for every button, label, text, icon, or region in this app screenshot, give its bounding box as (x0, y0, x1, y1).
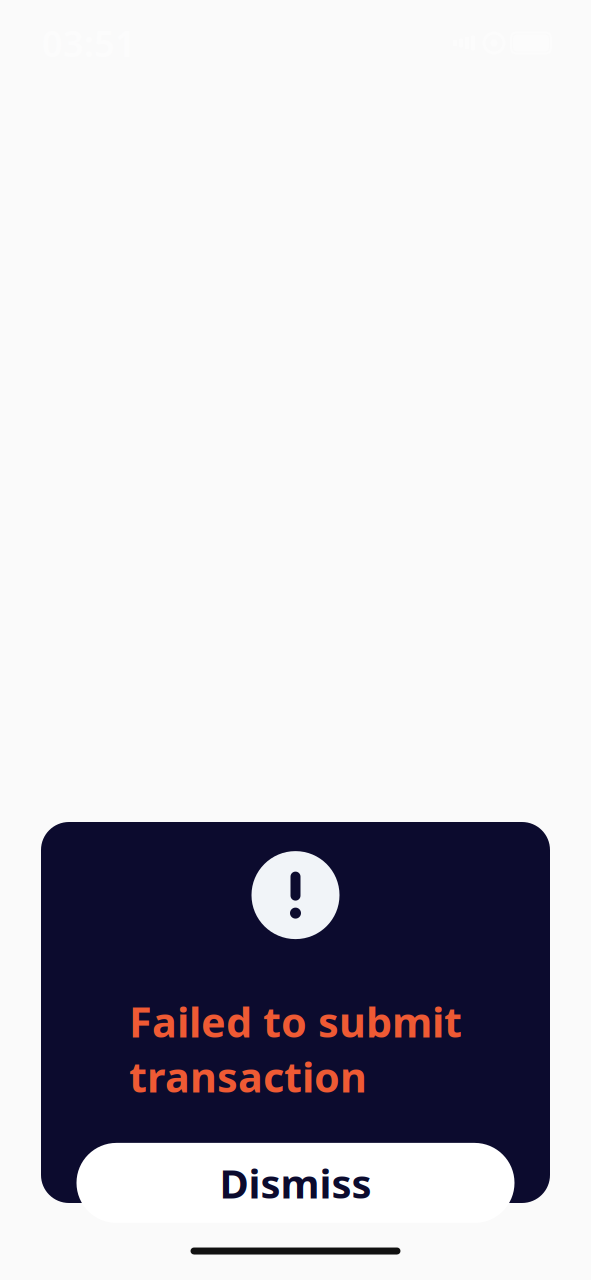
staticText: Dismiss (219, 1156, 371, 1209)
staticText: Failed to submit transaction (129, 994, 462, 1104)
button[interactable]: Dismiss (76, 1143, 514, 1223)
